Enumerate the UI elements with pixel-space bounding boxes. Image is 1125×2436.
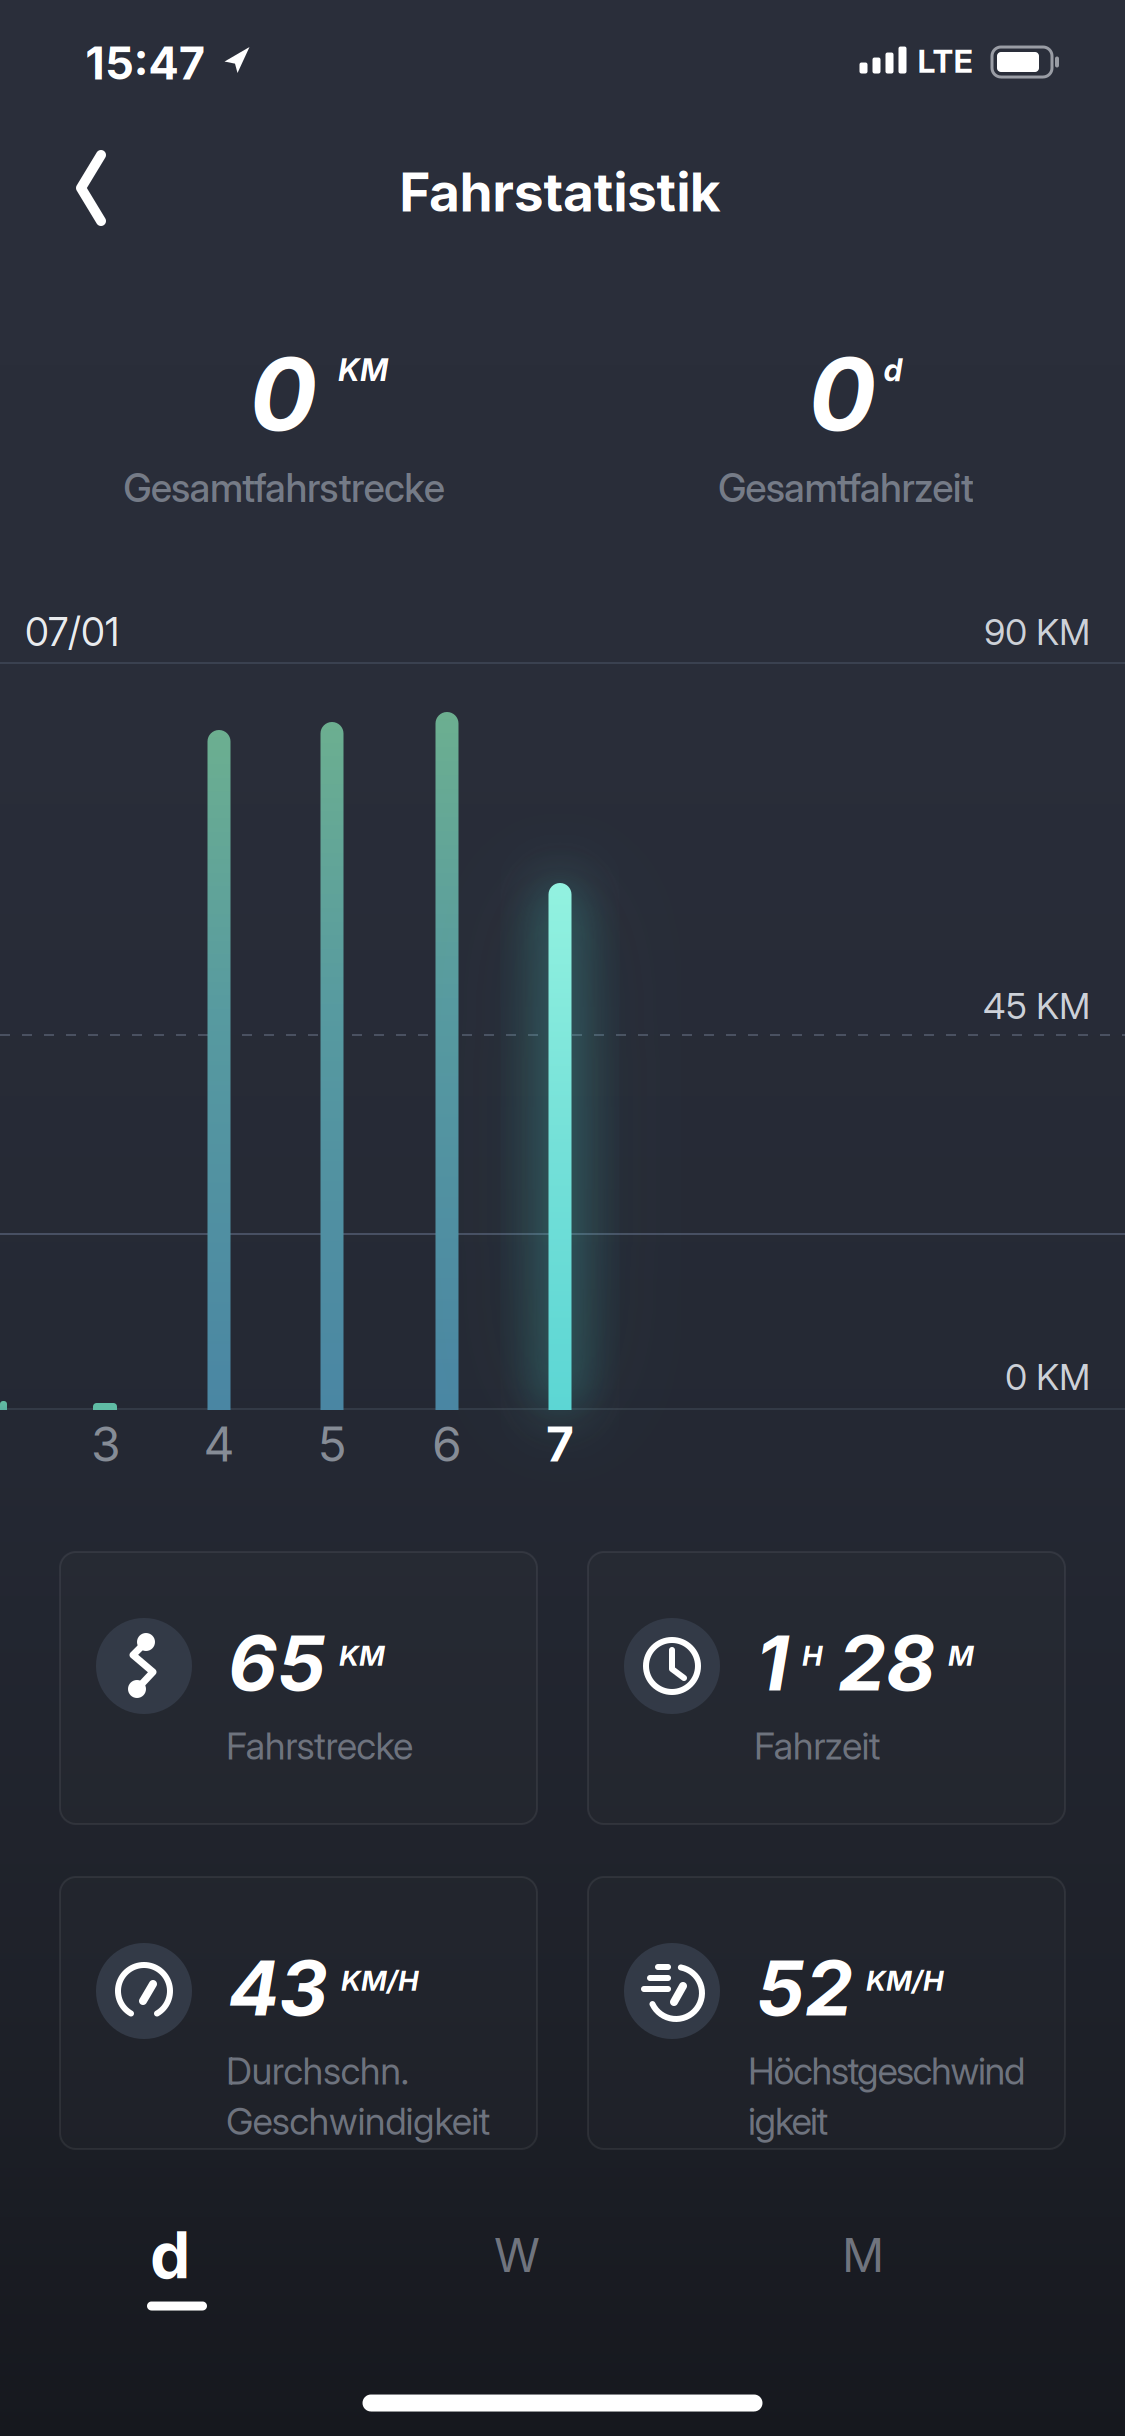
staticText: 1 [756,1618,789,1708]
staticText: Höchstgeschwind igkeit [748,2049,1025,2143]
staticText: KM/H [866,1964,944,1997]
button[interactable]: M [793,2210,933,2300]
staticText: Fahrstatistik [399,160,721,223]
staticText: LTE [917,42,972,80]
staticText: Gesamtfahrstrecke [123,465,445,511]
staticText: 4 [203,1416,234,1472]
staticText: 7 [546,1416,574,1472]
staticText: d [883,352,902,388]
button[interactable]: 3 [77,1402,135,1486]
staticText: 3 [91,1416,121,1472]
staticText: 65 [228,1618,326,1708]
staticText: 90 KM [984,611,1090,653]
staticText: Fahrstrecke [226,1724,413,1768]
staticText: 0 KM [1005,1356,1090,1398]
staticText: Fahrzeit [754,1724,881,1768]
button[interactable]: d [100,2210,240,2300]
staticText: 5 [317,1416,346,1472]
staticText: Durchschn. Geschwindigkeit [226,2049,491,2143]
staticText: M [948,1639,974,1672]
staticText: 6 [432,1416,462,1472]
staticText: Gesamtfahrzeit [718,465,974,511]
staticText: 0 [808,335,875,453]
staticText: 43 [228,1943,328,2033]
staticText: M [842,2227,884,2283]
staticText: H [802,1639,823,1672]
staticText: d [150,2217,190,2293]
staticText: 52 [756,1943,853,2033]
staticText: KM [339,1639,385,1672]
button[interactable]: 5 [303,1402,360,1486]
staticText: 15:47 [85,36,205,90]
staticText: KM [338,352,388,388]
button[interactable]: 6 [418,1402,476,1486]
button[interactable]: W [447,2210,587,2300]
staticText: 07/01 [25,609,119,655]
staticText: KM/H [341,1964,419,1997]
button[interactable]: 7 [532,1402,588,1486]
staticText: 0 [249,335,316,453]
button[interactable]: Back [57,131,131,245]
staticText: 28 [838,1618,935,1708]
button[interactable]: 4 [189,1402,248,1486]
staticText: 45 KM [983,985,1090,1027]
staticText: W [494,2227,540,2283]
